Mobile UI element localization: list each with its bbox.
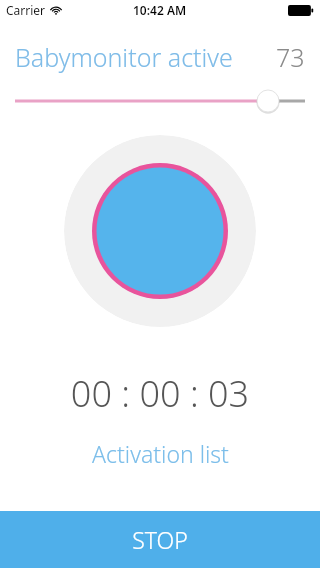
staticText: 73 — [276, 40, 305, 74]
staticText: STOP — [132, 524, 188, 555]
staticText: Carrier — [6, 2, 46, 18]
staticText: 10:42 AM — [133, 2, 187, 18]
staticText: Activation list — [92, 438, 229, 469]
button[interactable] — [0, 88, 320, 114]
staticText: Babymonitor active — [15, 40, 233, 74]
button[interactable]: Toggle monitor — [64, 135, 256, 327]
button[interactable]: Activation list — [0, 434, 320, 473]
button[interactable]: STOP — [0, 511, 320, 568]
staticText: 00 : 00 : 03 — [0, 369, 320, 418]
